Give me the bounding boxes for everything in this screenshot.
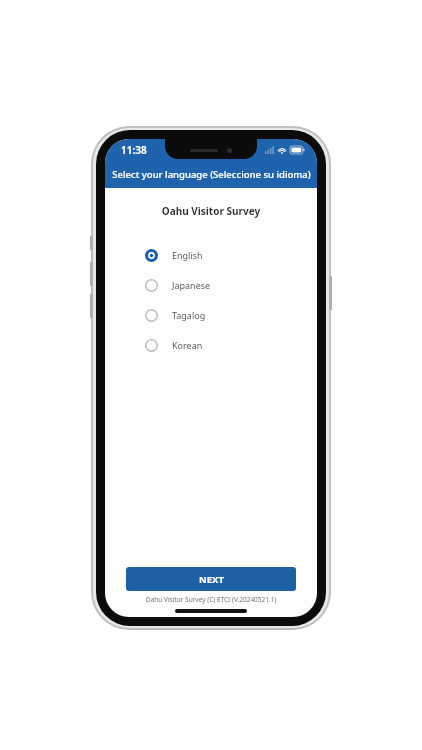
button[interactable]: English [105,240,317,270]
button[interactable]: Japanese [105,270,317,300]
staticText: Japanese [172,279,211,291]
staticText: Tagalog [172,309,206,321]
button[interactable]: Korean [105,330,317,360]
staticText: Select your language (Seleccione su idio… [112,168,311,181]
staticText: Oahu Visitor Survey (C) ETCI (V.20240521… [105,595,317,604]
staticText: Korean [172,339,203,351]
staticText: English [172,249,203,261]
button[interactable]: NEXT [126,567,296,591]
button[interactable]: Tagalog [105,300,317,330]
staticText: Oahu Visitor Survey [105,204,317,218]
staticText: NEXT [199,573,224,586]
staticText: 11:38 [121,143,147,157]
